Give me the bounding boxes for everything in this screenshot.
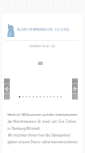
button[interactable]: Slide 11 [53,96,55,98]
button[interactable]: Next slide [72,78,78,99]
button[interactable]: Slide 10 [50,96,51,98]
button[interactable]: Slide 8 [43,96,45,98]
staticText: Wir möchten Ihnen hier die Gelegenheit [7,133,70,137]
button[interactable]: Slide 7 [39,96,41,98]
button[interactable]: Slide 2 [22,96,24,98]
staticText: geben unsere Praxis näher kennenzulernen… [7,140,78,144]
staticText: in Hamburg-Billstedt. [7,127,40,130]
button[interactable]: Slide 9 [46,96,48,98]
button[interactable]: Slide 5 [33,96,34,98]
button[interactable]: Slide 4 [29,96,31,98]
button[interactable]: Slide 6 [36,96,38,98]
button[interactable]: Slide 1 [19,96,20,98]
button[interactable]: Slide 13 [60,96,62,98]
button[interactable]: Slide 3 [26,96,27,98]
button[interactable]: Previous slide [4,78,10,99]
staticText: Telefon 73 67 29 [29,45,55,48]
staticText: Herzlich Willkommen auf den Internetseit… [7,113,77,117]
staticText: der Kleintierpraxis Dr. med. vet. Eva Tu… [7,120,76,124]
button[interactable]: Slide 12 [57,96,58,98]
staticText: KLEINTIERPRAXIS DR. TUTLIES [17,27,69,32]
